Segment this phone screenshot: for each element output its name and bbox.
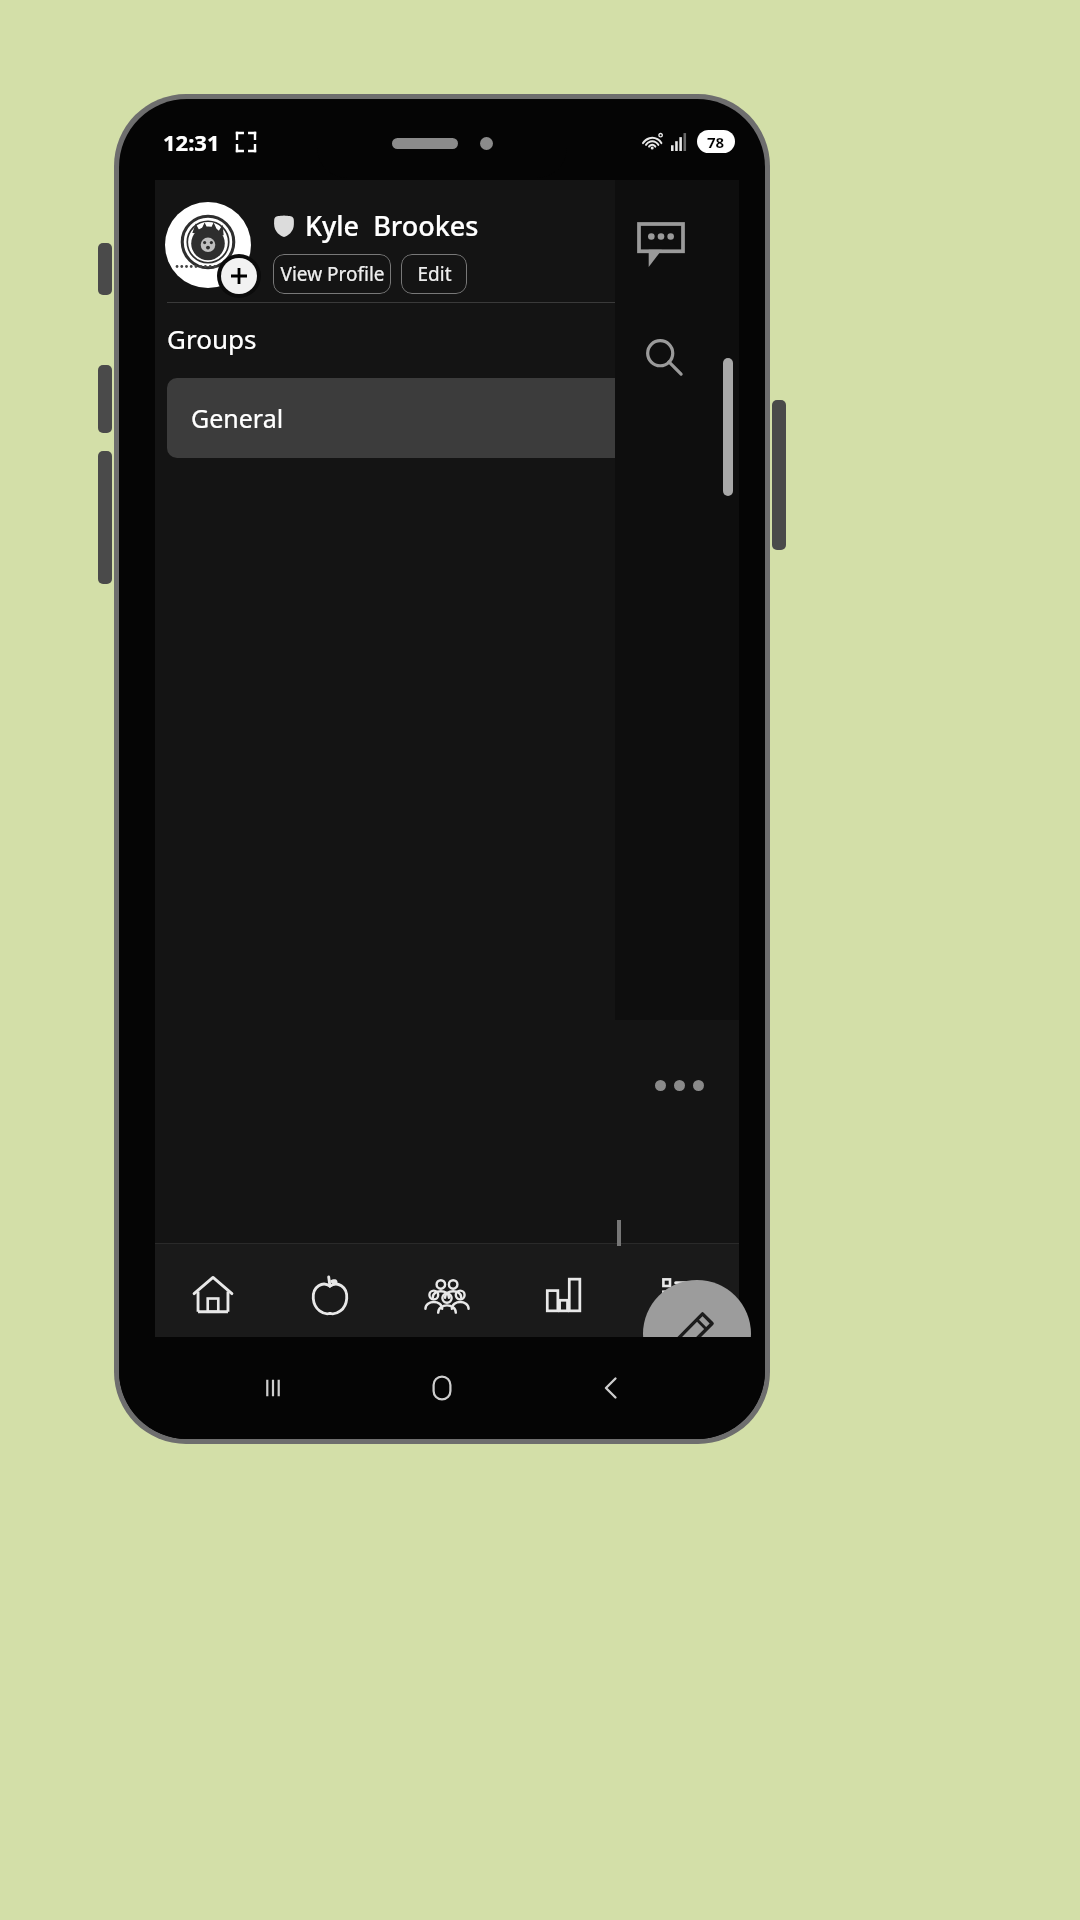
- staticText: Groups: [167, 321, 257, 356]
- staticText: 12:31: [163, 127, 220, 157]
- button[interactable]: Add photo: [217, 254, 261, 298]
- button[interactable]: Back: [526, 1355, 695, 1421]
- button[interactable]: Stats: [505, 1243, 622, 1347]
- button[interactable]: View Profile: [273, 254, 391, 294]
- button[interactable]: Recents: [189, 1355, 357, 1421]
- button[interactable]: Home: [357, 1355, 526, 1421]
- staticText: General: [191, 401, 284, 435]
- button[interactable]: Edit: [401, 254, 467, 294]
- staticText: 78: [707, 132, 725, 152]
- button[interactable]: Messages: [629, 214, 693, 278]
- button[interactable]: Home: [155, 1243, 271, 1347]
- button[interactable]: General: [167, 378, 659, 458]
- button[interactable]: Compose: [643, 1280, 751, 1388]
- button[interactable]: Nutrition: [271, 1243, 388, 1347]
- staticText: Edit: [417, 261, 452, 287]
- staticText: Kyle Brookes: [305, 207, 479, 244]
- button[interactable]: List: [622, 1243, 739, 1347]
- staticText: View Profile: [280, 261, 385, 287]
- button[interactable]: Search: [635, 328, 693, 386]
- button[interactable]: Groups: [388, 1243, 505, 1347]
